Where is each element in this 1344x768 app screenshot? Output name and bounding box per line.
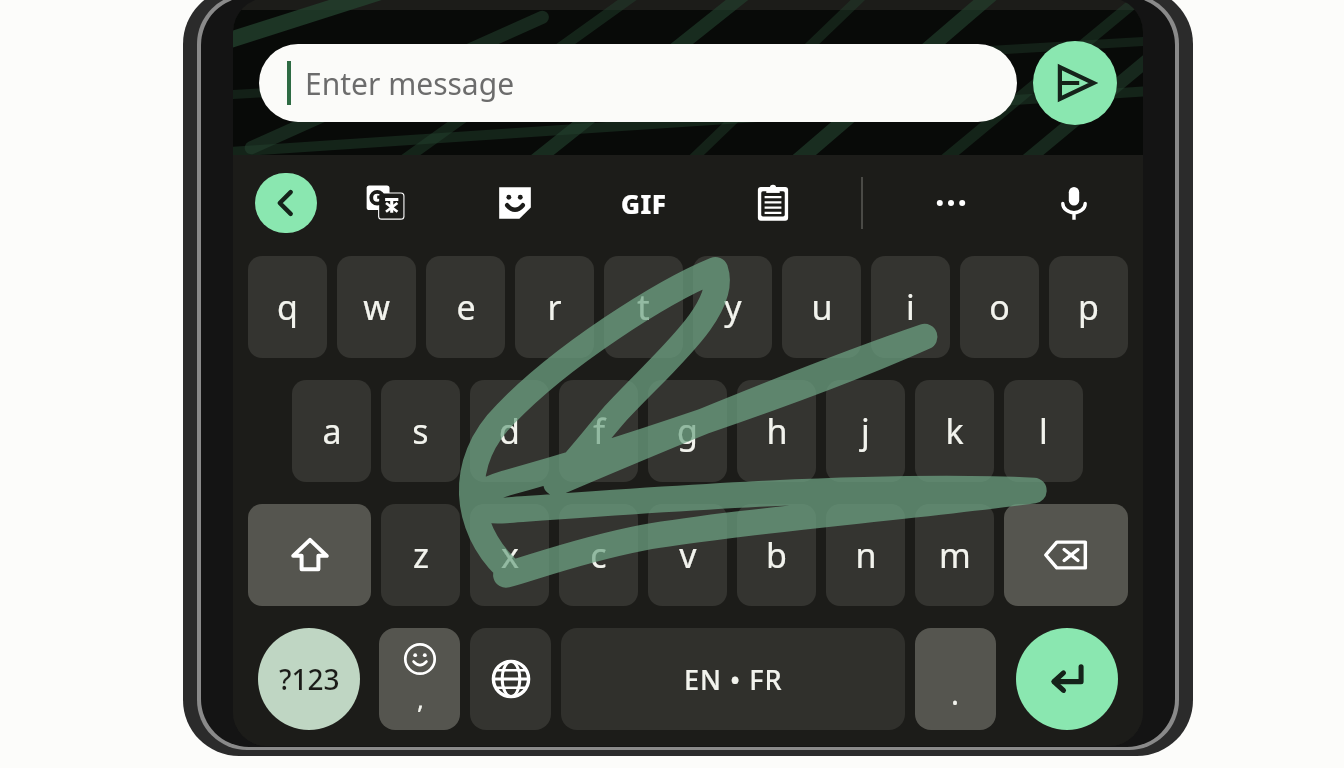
staticText: h [766, 408, 788, 454]
staticText: j [861, 408, 870, 454]
button[interactable]: a [292, 380, 371, 482]
staticText: x [501, 532, 519, 578]
staticText: z [413, 532, 429, 578]
button[interactable]: EN • FR [561, 628, 905, 730]
button[interactable]: Voice input [1043, 172, 1105, 234]
button[interactable]: Send [1033, 41, 1117, 125]
staticText: EN • FR [684, 661, 783, 698]
staticText: q [277, 284, 298, 330]
staticText: e [456, 284, 476, 330]
button[interactable]: Shift [248, 504, 371, 606]
button[interactable]: u [782, 256, 861, 358]
button[interactable]: Backspace [1004, 504, 1128, 606]
button[interactable]: c [559, 504, 638, 606]
button[interactable]: o [960, 256, 1039, 358]
staticText: m [939, 532, 971, 578]
button[interactable]: y [693, 256, 772, 358]
staticText: w [363, 284, 390, 330]
staticText: d [499, 408, 520, 454]
staticText: k [945, 408, 964, 454]
button[interactable]: j [826, 380, 905, 482]
staticText: i [906, 284, 915, 330]
staticText: u [811, 284, 833, 330]
button[interactable]: . [915, 628, 996, 730]
staticText: ?123 [279, 660, 340, 698]
staticText: a [322, 408, 342, 454]
staticText: GIF [621, 186, 667, 221]
button[interactable]: m [915, 504, 994, 606]
staticText: v [679, 532, 697, 578]
button[interactable]: v [648, 504, 727, 606]
button[interactable]: z [381, 504, 460, 606]
button[interactable]: More options [920, 172, 982, 234]
staticText: b [766, 532, 787, 578]
button[interactable]: l [1004, 380, 1083, 482]
staticText: s [412, 408, 429, 454]
staticText: o [989, 284, 1010, 330]
staticText: . [951, 673, 960, 714]
button[interactable]: Change language [470, 628, 551, 730]
staticText: , [417, 681, 424, 716]
button[interactable]: Back [255, 173, 317, 233]
button[interactable]: b [737, 504, 816, 606]
button[interactable]: f [559, 380, 638, 482]
button[interactable]: k [915, 380, 994, 482]
staticText: l [1039, 408, 1048, 454]
button[interactable]: e [426, 256, 505, 358]
button[interactable]: GIF [613, 172, 675, 234]
button[interactable]: w [337, 256, 416, 358]
button[interactable]: Translate [355, 172, 417, 234]
staticText: f [593, 408, 605, 454]
button[interactable]: ?123 [258, 628, 360, 730]
button[interactable]: h [737, 380, 816, 482]
button[interactable]: q [248, 256, 327, 358]
staticText: n [855, 532, 877, 578]
button[interactable]: Clipboard [742, 172, 804, 234]
button[interactable]: Enter message [259, 44, 1017, 122]
button[interactable]: s [381, 380, 460, 482]
staticText: y [724, 284, 742, 330]
button[interactable]: Emoji [379, 628, 460, 730]
button[interactable]: r [515, 256, 594, 358]
staticText: p [1078, 284, 1099, 330]
staticText: c [590, 532, 607, 578]
button[interactable]: i [871, 256, 950, 358]
button[interactable]: p [1049, 256, 1128, 358]
staticText: t [637, 284, 650, 330]
staticText: g [677, 408, 698, 454]
button[interactable]: d [470, 380, 549, 482]
button[interactable]: n [826, 504, 905, 606]
staticText: r [547, 284, 562, 330]
button[interactable]: Enter [1016, 628, 1118, 730]
button[interactable]: x [470, 504, 549, 606]
button[interactable]: Stickers [484, 172, 546, 234]
staticText: Enter message [305, 63, 515, 104]
button[interactable]: g [648, 380, 727, 482]
button[interactable]: t [604, 256, 683, 358]
